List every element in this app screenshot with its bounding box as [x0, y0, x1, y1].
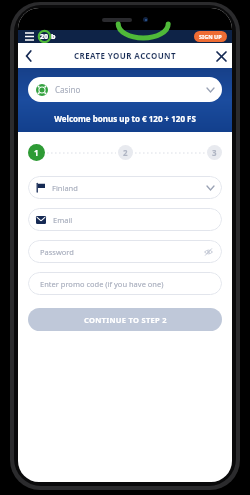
staticText: 3: [212, 147, 217, 158]
button[interactable]: 1: [28, 144, 45, 161]
button[interactable]: 2: [118, 145, 133, 160]
button[interactable]: Back: [18, 45, 40, 67]
staticText: Password: [40, 247, 74, 257]
button[interactable]: Show password: [203, 246, 214, 257]
staticText: 1: [34, 147, 39, 158]
button[interactable]: Close: [210, 45, 232, 67]
button[interactable]: Finland: [28, 176, 222, 199]
button[interactable]: SIGN UP: [194, 31, 227, 42]
staticText: 2: [123, 147, 128, 158]
staticText: CONTINUE TO STEP 2: [84, 315, 167, 325]
staticText: CREATE YOUR ACCOUNT: [74, 50, 176, 61]
button[interactable]: 3: [207, 145, 222, 160]
staticText: b: [51, 32, 56, 42]
button[interactable]: CONTINUE TO STEP 2: [28, 308, 222, 331]
button[interactable]: Password: [28, 240, 222, 263]
button[interactable]: Menu: [23, 30, 36, 43]
staticText: SIGN UP: [199, 33, 222, 40]
staticText: Casino: [55, 84, 81, 95]
button[interactable]: Home: [38, 30, 51, 43]
staticText: Finland: [52, 183, 78, 193]
button[interactable]: Casino: [28, 77, 222, 102]
staticText: 20: [40, 32, 49, 42]
button[interactable]: Enter promo code (if you have one): [28, 272, 222, 295]
staticText: Enter promo code (if you have one): [40, 279, 164, 289]
button[interactable]: Email: [28, 208, 222, 231]
staticText: Email: [53, 215, 73, 225]
staticText: Welcome bonus up to € 120 + 120 FS: [28, 113, 222, 124]
